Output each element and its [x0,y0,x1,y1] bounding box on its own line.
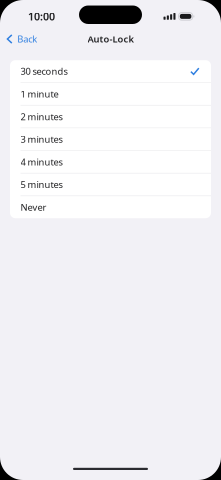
staticText: 1 minute [20,88,58,100]
staticText: 2 minutes [20,110,62,123]
staticText: Auto-Lock [87,33,133,45]
button[interactable]: 5 minutes [10,173,211,196]
staticText: 3 minutes [20,133,62,145]
staticText: Never [20,201,46,213]
staticText: 10:00 [28,9,55,23]
button[interactable]: 4 minutes [10,151,211,173]
button[interactable]: 3 minutes [10,128,211,150]
button[interactable]: 1 minute [10,83,211,105]
staticText: 5 minutes [20,178,62,191]
button[interactable]: Never [10,196,211,218]
staticText: 30 seconds [20,65,67,77]
button[interactable]: Back [0,29,42,49]
button[interactable]: 2 minutes [10,105,211,128]
staticText: Back [17,33,37,45]
button[interactable]: 30 seconds [10,60,211,82]
staticText: 4 minutes [20,156,62,168]
